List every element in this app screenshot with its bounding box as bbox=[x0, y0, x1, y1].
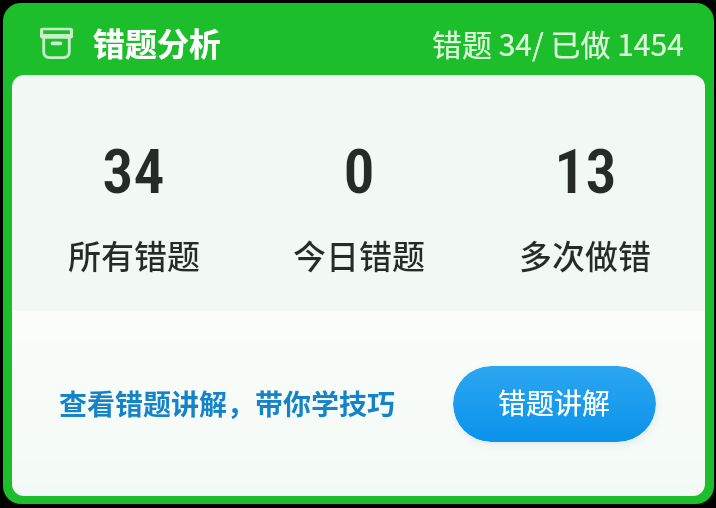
staticText: 13 bbox=[554, 135, 617, 208]
button[interactable]: 0 bbox=[246, 135, 472, 279]
staticText: 34 bbox=[102, 135, 165, 208]
button[interactable]: 34 bbox=[21, 135, 246, 279]
staticText: 错题讲解 bbox=[498, 382, 611, 423]
staticText: 错题分析 bbox=[93, 19, 222, 65]
staticText: 0 bbox=[343, 135, 375, 208]
button[interactable]: 查看错题讲解，带你学技巧 bbox=[59, 377, 396, 430]
staticText: 多次做错 bbox=[519, 231, 651, 279]
button[interactable]: 错题本 bbox=[40, 26, 73, 59]
button[interactable]: 13 bbox=[472, 135, 698, 279]
button[interactable]: 错题讲解 bbox=[453, 366, 656, 442]
staticText: 错题 34/ 已做 1454 bbox=[432, 21, 684, 64]
staticText: 所有错题 bbox=[68, 231, 200, 279]
staticText: 今日错题 bbox=[293, 231, 425, 279]
